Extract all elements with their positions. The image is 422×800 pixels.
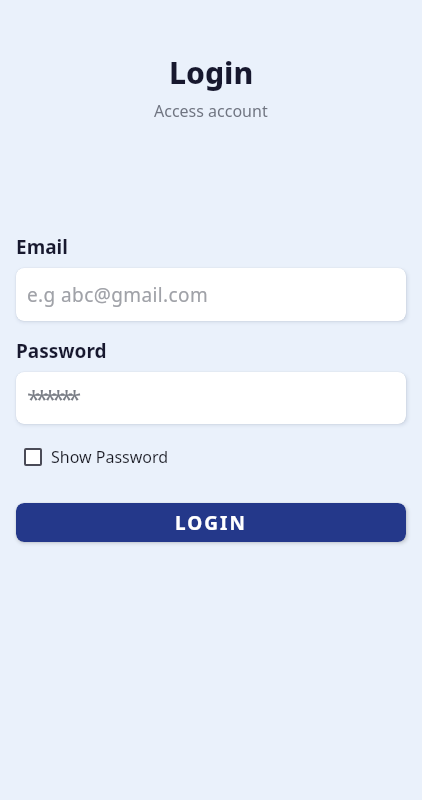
staticText: Access account xyxy=(154,100,268,122)
staticText: Email xyxy=(16,234,68,260)
staticText: Password xyxy=(16,338,107,364)
button[interactable]: ****** xyxy=(16,372,406,424)
staticText: LOGIN xyxy=(175,510,247,536)
staticText: ****** xyxy=(27,382,77,415)
staticText: e.g abc@gmail.com xyxy=(27,282,209,308)
button[interactable]: e.g abc@gmail.com xyxy=(16,268,406,321)
staticText: Show Password xyxy=(51,446,169,468)
button[interactable]: LOGIN xyxy=(16,503,406,542)
button[interactable]: Show Password xyxy=(16,446,169,468)
staticText: Login xyxy=(169,52,254,93)
